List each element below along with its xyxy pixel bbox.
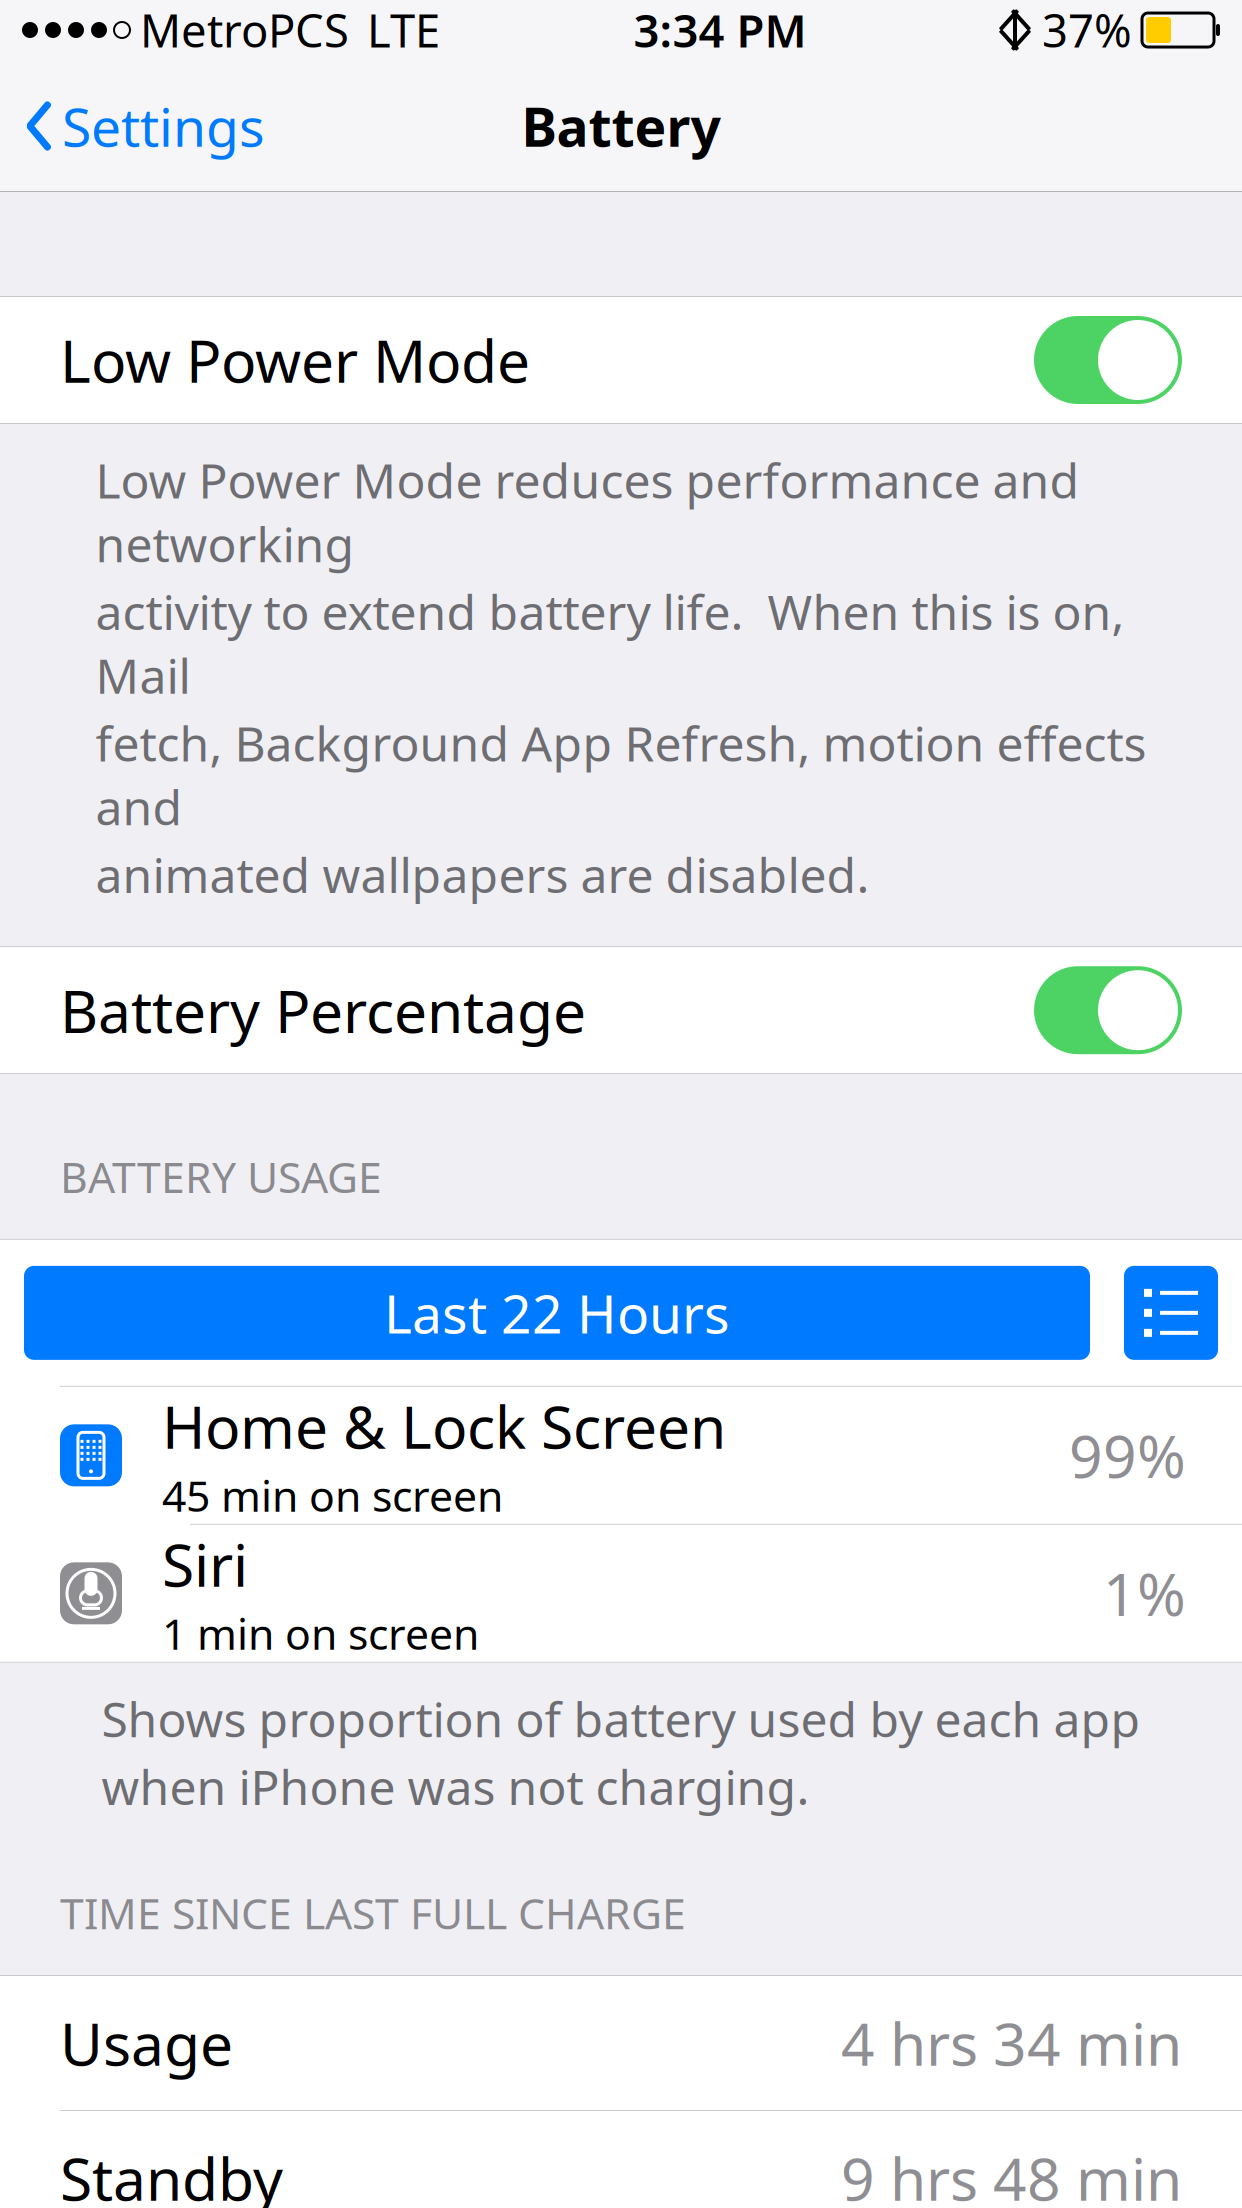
staticText: BATTERY USAGE — [60, 1148, 382, 1205]
staticText: 1 min on screen — [162, 1605, 479, 1662]
button[interactable]: Show battery usage list — [1124, 1266, 1218, 1360]
staticText: LTE — [367, 0, 440, 60]
button[interactable]: Siri — [0, 1525, 1242, 1662]
staticText: TIME SINCE LAST FULL CHARGE — [60, 1884, 686, 1941]
staticText: when iPhone was not charging. — [101, 1755, 809, 1818]
button[interactable]: Low Power Mode — [0, 297, 1242, 423]
staticText: Home & Lock Screen — [162, 1387, 726, 1465]
staticText: Siri — [162, 1525, 248, 1603]
staticText: Last 22 Hours — [384, 1277, 730, 1348]
staticText: MetroPCS — [140, 0, 349, 60]
staticText: Battery Percentage — [60, 971, 586, 1049]
staticText: Settings — [62, 91, 265, 161]
staticText: Standby — [60, 2139, 283, 2208]
staticText: fetch, Background App Refresh, motion ef… — [95, 711, 1146, 838]
staticText: Low Power Mode — [60, 321, 530, 399]
button[interactable]: Home & Lock Screen — [0, 1387, 1242, 1524]
button[interactable]: Battery Percentage — [0, 947, 1242, 1073]
staticText: Usage — [60, 2004, 233, 2082]
staticText: animated wallpapers are disabled. — [95, 842, 869, 906]
staticText: 45 min on screen — [162, 1467, 503, 1524]
staticText: Shows proportion of battery used by each… — [101, 1687, 1140, 1751]
button[interactable]: Settings — [0, 82, 291, 170]
staticText: 1% — [1103, 1554, 1186, 1632]
staticText: activity to extend battery life. When th… — [95, 579, 1124, 707]
staticText: Battery — [521, 91, 720, 161]
staticText: 37% — [1042, 0, 1132, 60]
staticText: Low Power Mode reduces performance and n… — [95, 448, 1079, 575]
staticText: 4 hrs 34 min — [841, 2004, 1182, 2082]
staticText: 9 hrs 48 min — [841, 2139, 1182, 2208]
staticText: 3:34 PM — [633, 0, 806, 60]
staticText: 99% — [1069, 1416, 1186, 1494]
button[interactable]: Last 22 Hours — [24, 1266, 1090, 1360]
